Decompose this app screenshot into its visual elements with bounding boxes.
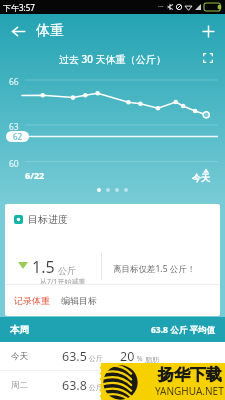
button[interactable]: 今天	[0, 342, 225, 370]
staticText: 66	[9, 76, 19, 88]
staticText: 周二	[11, 380, 28, 391]
staticText: 从7/1开始减重	[40, 277, 86, 287]
staticText: 目标进度	[28, 213, 68, 226]
staticText: ···	[158, 2, 164, 12]
staticText: 今天	[192, 172, 210, 183]
button[interactable]: Fullscreen	[199, 49, 217, 67]
staticText: 60	[9, 158, 19, 170]
staticText: YANGHUA.NET	[155, 384, 224, 398]
button[interactable]: 周二	[0, 371, 225, 399]
staticText: 脂肪	[145, 355, 159, 364]
staticText: 62	[13, 131, 23, 142]
staticText: 本周	[10, 324, 29, 336]
staticText: 公斤	[87, 383, 103, 393]
staticText: %	[135, 354, 145, 364]
staticText: 63.5	[62, 348, 87, 365]
staticText: 今天	[11, 351, 28, 362]
staticText: 63	[9, 121, 19, 133]
staticText: 公斤	[58, 265, 76, 276]
staticText: 20	[120, 348, 135, 365]
button[interactable]: Add	[194, 17, 222, 45]
staticText: 1.5	[32, 256, 55, 278]
staticText: 过去 30 天体重（公斤）	[59, 52, 166, 66]
staticText: 离目标仅差1.5 公斤！	[113, 263, 196, 275]
button[interactable]: 编辑目标	[56, 285, 102, 316]
staticText: 记录体重	[14, 295, 50, 306]
staticText: 公斤	[87, 354, 103, 364]
staticText: 下午3:57	[3, 2, 35, 13]
staticText: 6/22	[25, 169, 45, 181]
staticText: 63.8 公斤 平均值	[151, 324, 215, 336]
button[interactable]: 记录体重	[5, 285, 56, 316]
staticText: 体重	[36, 22, 64, 40]
staticText: 扬华下载	[158, 365, 222, 385]
staticText: 63.8	[62, 377, 87, 394]
staticText: 编辑目标	[61, 295, 97, 306]
button[interactable]: Back	[4, 17, 32, 45]
